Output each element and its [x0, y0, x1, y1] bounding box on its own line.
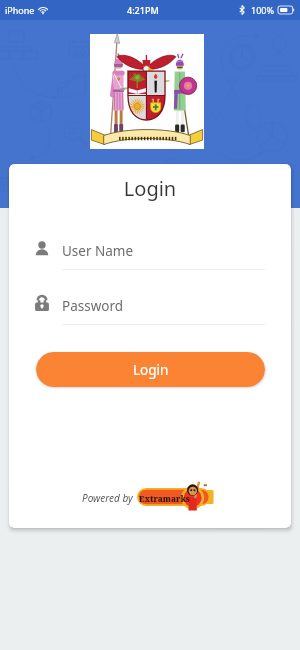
staticText: 100% — [251, 4, 274, 16]
staticText: Password — [62, 297, 124, 315]
staticText: User Name — [62, 242, 134, 260]
staticText: Login — [9, 175, 291, 202]
staticText: iPhone — [5, 4, 35, 16]
other: School coat of arms — [90, 34, 204, 149]
staticText: Extramarks — [139, 493, 190, 504]
staticText: Powered by — [82, 491, 133, 505]
staticText: Login — [133, 361, 169, 379]
staticText: 4:21PM — [127, 4, 159, 16]
button[interactable]: User Name — [33, 234, 265, 271]
button[interactable]: Password — [33, 289, 265, 326]
button[interactable]: Login — [36, 352, 265, 387]
